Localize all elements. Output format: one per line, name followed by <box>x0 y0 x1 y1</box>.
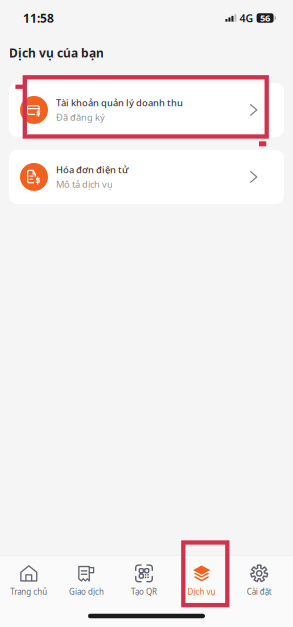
staticText: Giao dịch <box>69 586 104 597</box>
staticText: Dịch vụ <box>188 586 216 597</box>
staticText: Mô tả dịch vụ <box>56 178 113 190</box>
staticText: Hóa đơn điện tử <box>56 163 129 176</box>
staticText: Cài đặt <box>247 586 272 597</box>
staticText: Trang chủ <box>10 586 47 597</box>
button[interactable]: Giao dịch <box>58 555 115 605</box>
staticText: Tài khoản quản lý doanh thu <box>56 96 183 109</box>
staticText: Dịch vụ của bạn <box>9 45 104 61</box>
button[interactable]: Hóa đơn điện tử <box>9 150 284 204</box>
staticText: 56 <box>260 12 270 24</box>
button[interactable]: Dịch vụ <box>173 555 230 605</box>
button[interactable]: Cài đặt <box>230 555 288 605</box>
staticText: Đã đăng ký <box>56 111 105 123</box>
button[interactable]: Tạo QR <box>115 555 173 605</box>
staticText: 11:58 <box>23 10 54 26</box>
staticText: Tạo QR <box>131 586 157 597</box>
staticText: 4G <box>240 11 254 25</box>
button[interactable]: Tài khoản quản lý doanh thu <box>9 83 284 137</box>
button[interactable]: Trang chủ <box>0 555 58 605</box>
